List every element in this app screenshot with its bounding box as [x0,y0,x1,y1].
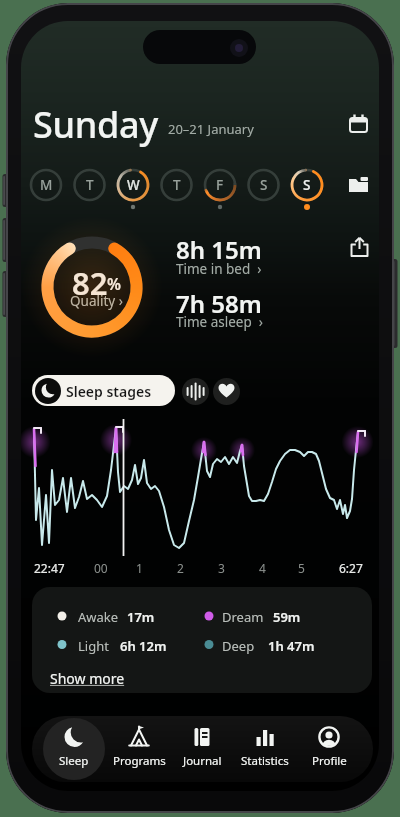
staticText: W [127,176,140,194]
staticText: S [303,176,311,194]
button[interactable]: T [69,164,111,206]
button[interactable]: Statistics [233,716,297,782]
button[interactable] [345,109,373,137]
staticText: 7h 58m [176,287,262,320]
button[interactable] [213,378,240,405]
staticText: Dream [222,608,264,626]
staticText: Awake [78,608,119,626]
staticText: Sleep stages [66,382,152,401]
staticText: T [86,176,94,194]
staticText: 82 [72,262,108,304]
button[interactable]: S [286,164,328,206]
staticText: Programs [113,753,166,769]
staticText: % [107,273,122,295]
button[interactable] [171,229,301,279]
staticText: 17m [127,608,155,626]
button[interactable] [345,171,373,199]
staticText: Deep [222,637,255,655]
staticText: 1 [136,560,143,576]
button[interactable]: Sleep stages [32,375,175,406]
button[interactable]: Sleep [42,716,106,782]
button[interactable] [182,378,209,405]
staticText: Show more [50,669,125,688]
staticText: 6:27 [339,560,363,576]
staticText: 6h 12m [120,637,167,655]
button[interactable] [34,229,150,345]
staticText: S [260,176,268,194]
button[interactable]: S [243,164,285,206]
button[interactable]: T [156,164,198,206]
staticText: Sunday [33,100,159,149]
staticText: 8h 15m [176,233,262,266]
staticText: Light [78,637,109,655]
button[interactable]: Show more [50,669,125,688]
staticText: Sleep [59,753,89,769]
button[interactable]: W [112,164,154,206]
staticText: 1h 47m [268,637,315,655]
staticText: Time asleep › [176,313,263,331]
staticText: 2 [177,560,184,576]
staticText: F [216,176,224,194]
staticText: Statistics [241,753,289,769]
button[interactable]: F [199,164,241,206]
button[interactable]: Profile [297,716,361,782]
staticText: Quality › [70,292,123,310]
staticText: Journal [183,753,222,769]
staticText: T [173,176,181,194]
button[interactable]: Journal [170,716,234,782]
staticText: 22:47 [34,560,65,576]
button[interactable] [171,283,301,333]
staticText: 4 [259,560,266,576]
staticText: Time in bed › [176,260,262,278]
staticText: 59m [273,608,301,626]
button[interactable]: Programs [107,716,171,782]
staticText: 3 [218,560,225,576]
button[interactable] [346,233,374,261]
button[interactable]: M [25,164,67,206]
staticText: Profile [312,753,347,769]
staticText: 00 [94,560,108,576]
staticText: 5 [298,560,305,576]
staticText: M [40,176,53,194]
staticText: 20–21 January [168,120,254,138]
